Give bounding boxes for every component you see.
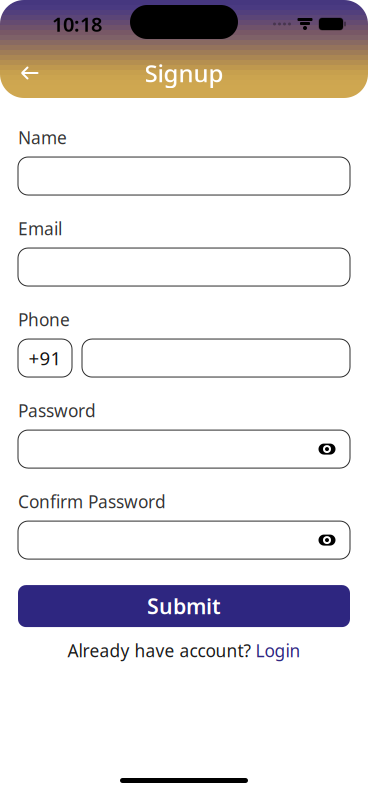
button[interactable] [18,157,350,195]
button[interactable] [18,430,350,468]
staticText: Submit [147,592,221,620]
button[interactable]: +91 [18,339,72,377]
button[interactable]: Submit [18,585,350,627]
staticText: Confirm Password [18,490,166,513]
button[interactable] [18,521,350,559]
staticText: Phone [18,308,70,331]
staticText: Email [18,217,62,240]
staticText: Login [255,639,300,662]
staticText: Password [18,399,96,422]
button[interactable] [18,248,350,286]
staticText: Already have account? [67,639,251,662]
button[interactable]: Already have account? [18,635,350,666]
staticText: 10:18 [52,11,102,37]
button[interactable]: Back [8,51,52,95]
staticText: Signup [144,57,223,89]
staticText: Name [18,126,67,149]
staticText: +91 [28,346,61,370]
button[interactable] [82,339,350,377]
